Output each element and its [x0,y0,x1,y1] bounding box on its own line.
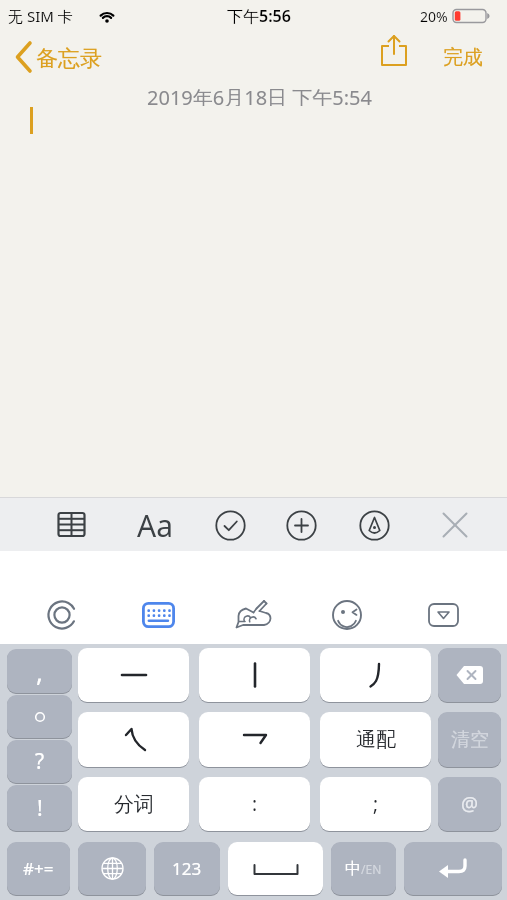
button[interactable] [433,501,477,549]
button[interactable]: , [7,649,72,693]
button[interactable]: 完成 [421,45,483,70]
staticText: 无 SIM 卡 [8,6,73,26]
button[interactable]: #+= [7,842,70,895]
staticText: 123 [172,857,202,880]
button[interactable]: 清空 [438,712,501,767]
staticText: ! [37,794,43,823]
button[interactable] [138,594,180,636]
staticText: : [252,791,258,817]
staticText: 清空 [451,728,489,752]
button[interactable] [78,648,189,702]
staticText: 2019年6月18日 下午5:54 [147,84,372,106]
staticText: @ [461,791,479,817]
button[interactable] [232,594,274,636]
button[interactable]: ; [320,777,431,831]
button[interactable] [351,501,399,549]
button[interactable] [48,501,96,549]
staticText: 中 [345,859,361,879]
staticText: ; [373,791,379,817]
staticText: #+= [23,857,54,880]
staticText: 20% [420,7,448,26]
button[interactable] [207,501,255,549]
button[interactable] [199,712,310,767]
button[interactable] [325,594,367,636]
button[interactable]: 中 [331,842,396,895]
staticText: , [36,654,43,689]
button[interactable]: ? [7,740,72,783]
button[interactable]: Aa [130,501,180,549]
button[interactable]: 分词 [78,777,189,831]
button[interactable] [376,32,412,72]
button[interactable] [278,501,326,549]
button[interactable] [404,842,502,895]
staticText: 完成 [443,45,483,70]
button[interactable]: ! [7,785,72,831]
button[interactable] [78,712,189,767]
staticText: Aa [137,505,173,546]
button[interactable] [10,38,120,76]
staticText: 通配 [356,727,396,752]
button[interactable] [42,594,84,636]
button[interactable] [438,648,501,702]
button[interactable] [7,695,72,738]
button[interactable] [228,842,323,895]
staticText: ? [35,747,45,776]
staticText: /EN [361,861,382,877]
button[interactable] [320,648,431,702]
button[interactable]: 通配 [320,712,431,767]
staticText: 分词 [114,792,154,817]
staticText: 备忘录 [36,45,102,70]
button[interactable]: @ [438,777,501,831]
button[interactable]: 123 [154,842,220,895]
button[interactable] [199,648,310,702]
button[interactable] [424,596,464,634]
button[interactable]: : [199,777,310,831]
button[interactable] [78,842,146,895]
staticText: 下午5:56 [227,5,291,27]
